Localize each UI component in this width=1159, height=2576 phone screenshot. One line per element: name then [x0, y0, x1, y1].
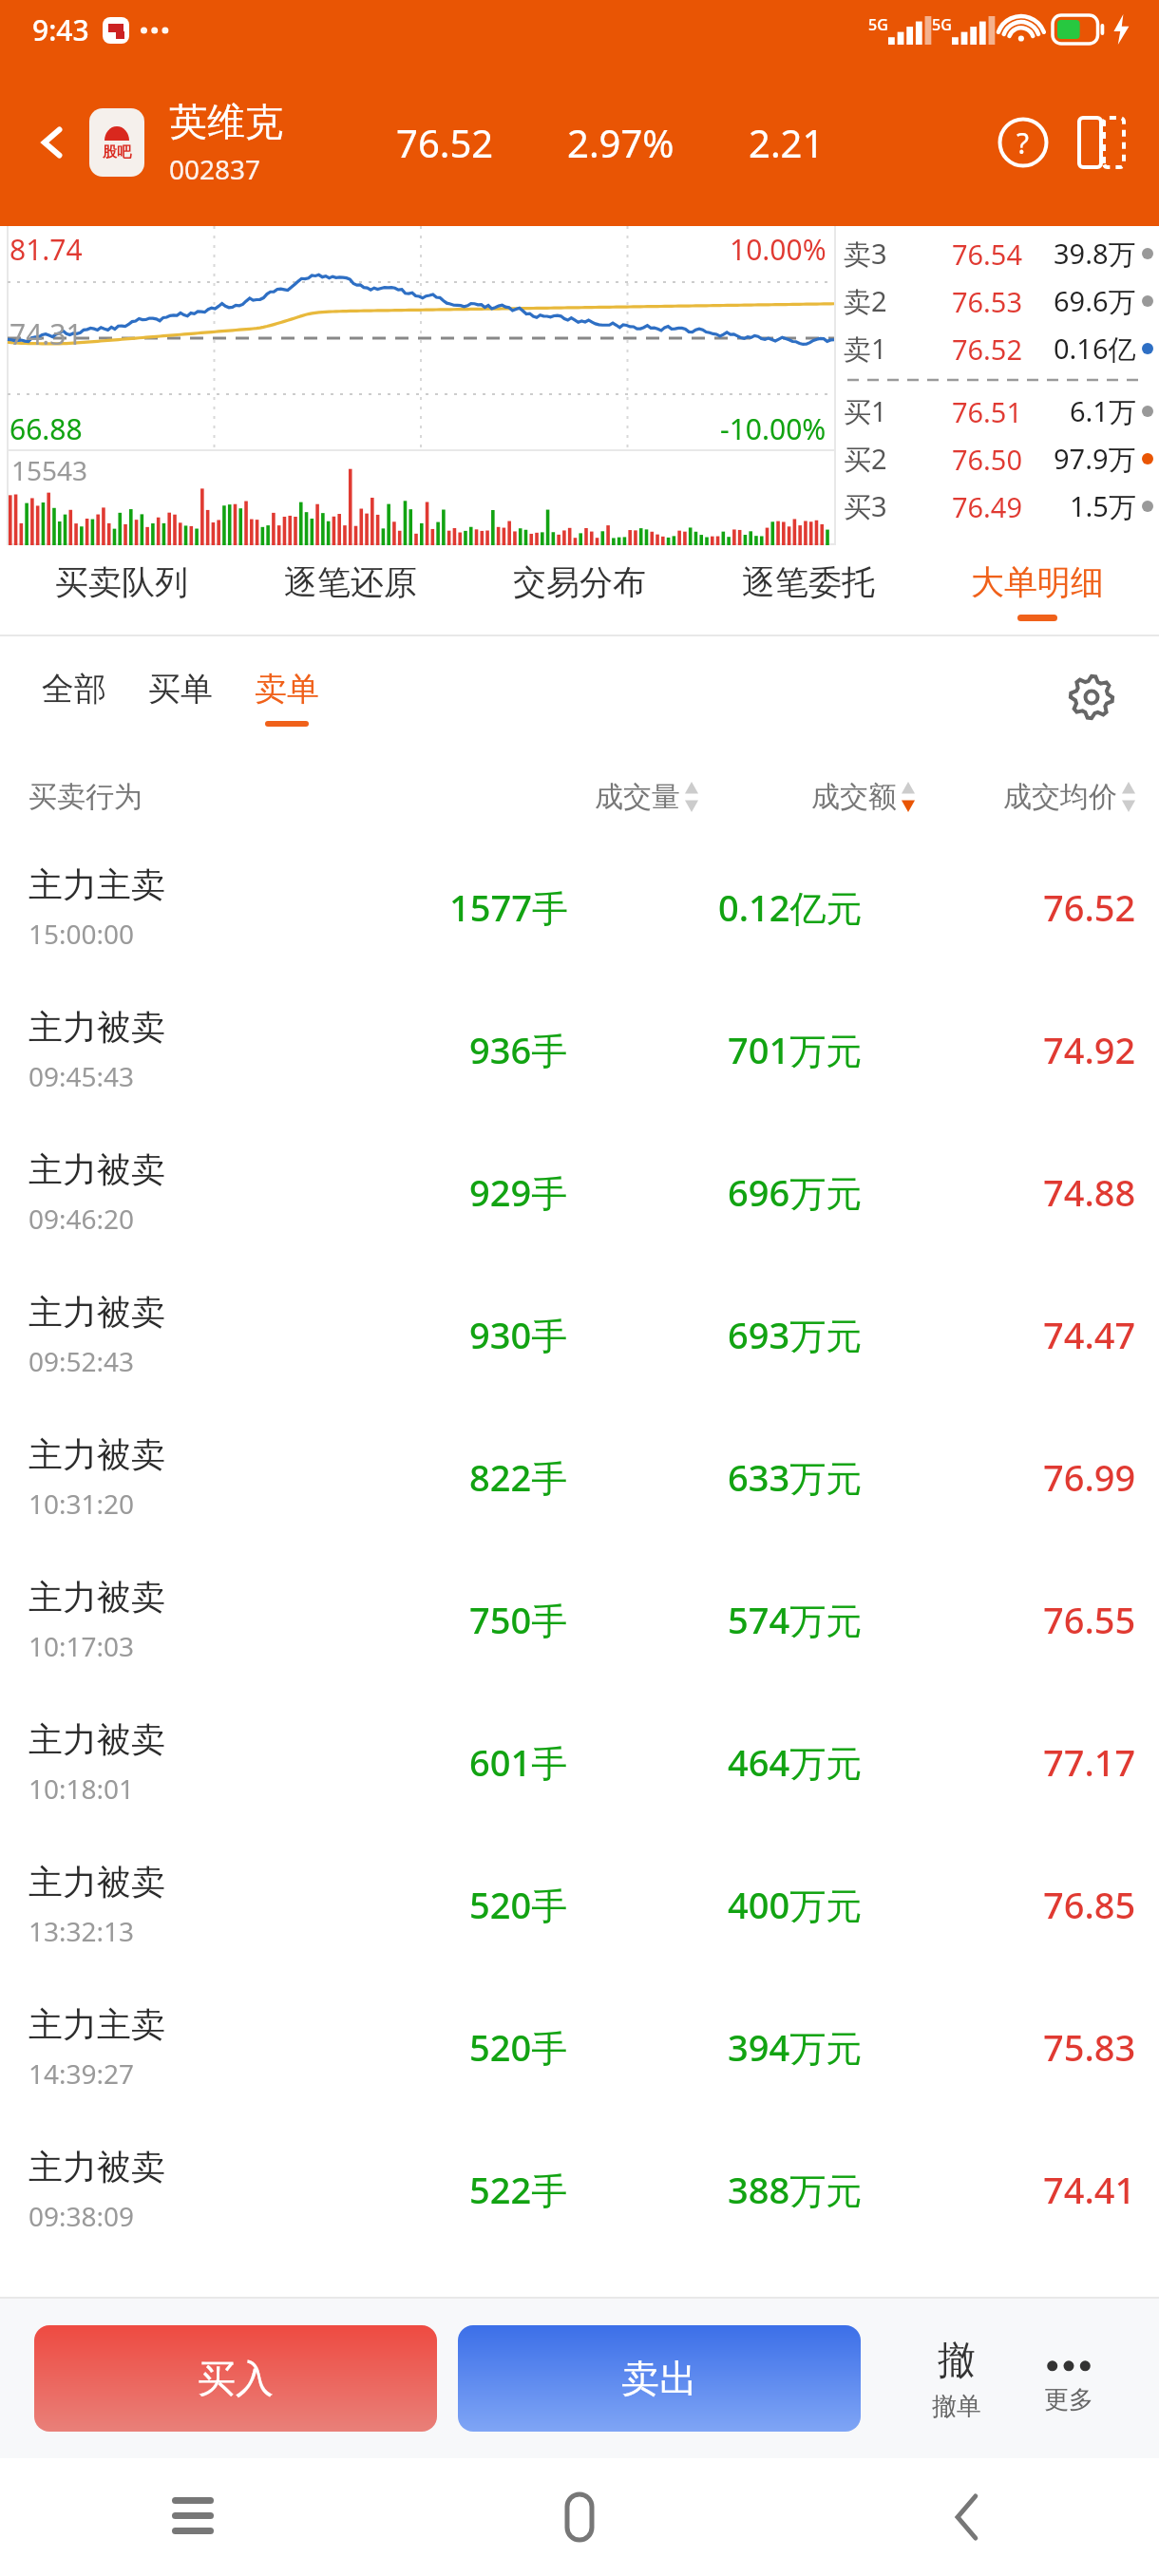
staticText: 卖2 — [844, 282, 887, 320]
staticText: 买2 — [844, 440, 887, 478]
staticText: 2.21 — [749, 117, 825, 168]
staticText: -10.00% — [720, 409, 826, 448]
button[interactable]: 交易分布 — [465, 545, 693, 636]
staticText: 81.74 — [9, 230, 83, 269]
staticText: 15543 — [11, 452, 88, 488]
button[interactable]: Scan — [1066, 107, 1136, 178]
staticText: 大单明细 — [971, 561, 1104, 603]
button[interactable]: 主力被卖 — [0, 2118, 1159, 2261]
button[interactable]: 主力被卖 — [0, 1121, 1159, 1263]
staticText: 9:43 — [32, 10, 89, 49]
button[interactable]: 大单明细 — [922, 545, 1151, 636]
staticText: 逐笔还原 — [284, 561, 417, 603]
button[interactable]: 卖2 — [844, 277, 1153, 325]
staticText: 10:31:20 — [28, 1486, 135, 1522]
staticText: 76.51 — [887, 393, 1022, 430]
staticText: 822手 — [469, 1452, 568, 1502]
button[interactable]: 主力被卖 — [0, 1833, 1159, 1976]
staticText: 76.99 — [1043, 1452, 1136, 1502]
button[interactable]: 买2 — [844, 435, 1153, 483]
button[interactable]: 更多 — [1013, 2299, 1125, 2458]
button[interactable]: 逐笔委托 — [693, 545, 922, 636]
staticText: 主力主卖 — [28, 863, 165, 906]
button[interactable]: 撤 — [901, 2299, 1013, 2458]
button[interactable]: 买1 — [844, 388, 1153, 435]
staticText: 0.12亿元 — [718, 882, 863, 932]
staticText: 13:32:13 — [28, 1913, 135, 1949]
staticText: 买卖队列 — [55, 561, 188, 603]
button[interactable]: Back — [19, 109, 85, 176]
staticText: 主力被卖 — [28, 1861, 165, 1904]
staticText: 成交量 — [595, 779, 680, 815]
staticText: 39.8万 — [1054, 235, 1136, 273]
staticText: 6.1万 — [1070, 392, 1136, 430]
staticText: 400万元 — [728, 1880, 863, 1929]
button[interactable]: 买单 — [127, 636, 234, 758]
button[interactable]: 买入 — [34, 2325, 437, 2432]
staticText: 76.49 — [887, 488, 1022, 525]
staticText: 520手 — [469, 1880, 568, 1929]
staticText: 成交额 — [811, 779, 897, 815]
staticText: 66.88 — [9, 409, 83, 448]
button[interactable]: 主力主卖 — [0, 1976, 1159, 2118]
staticText: 97.9万 — [1054, 440, 1136, 478]
button[interactable]: 成交额 — [811, 779, 916, 815]
staticText: 成交均价 — [1003, 779, 1117, 815]
button[interactable]: 主力被卖 — [0, 1691, 1159, 1833]
button[interactable]: Home — [386, 2458, 772, 2576]
staticText: 主力被卖 — [28, 1576, 165, 1619]
staticText: 卖出 — [621, 2355, 697, 2402]
staticText: 701万元 — [728, 1025, 863, 1074]
staticText: 002837 — [169, 151, 261, 187]
button[interactable]: 买3 — [844, 483, 1153, 530]
staticText: 1.5万 — [1070, 487, 1136, 525]
staticText: 5G — [932, 14, 952, 35]
staticText: 主力主卖 — [28, 2003, 165, 2046]
staticText: 5G — [868, 14, 888, 35]
staticText: 买1 — [844, 392, 887, 430]
staticText: ? — [1016, 123, 1030, 162]
staticText: 主力被卖 — [28, 1148, 165, 1191]
staticText: 撤单 — [932, 2391, 981, 2422]
button[interactable]: 成交量 — [595, 779, 699, 815]
button[interactable]: Help — [986, 105, 1060, 180]
staticText: 09:52:43 — [28, 1343, 135, 1379]
staticText: 74.31 — [9, 314, 83, 353]
staticText: 522手 — [469, 2165, 568, 2214]
staticText: 75.83 — [1043, 2022, 1136, 2072]
staticText: 主力被卖 — [28, 1433, 165, 1476]
button[interactable]: 卖单 — [234, 636, 340, 758]
button[interactable]: 成交均价 — [1003, 779, 1136, 815]
staticText: 76.53 — [887, 283, 1022, 320]
button[interactable]: 买卖队列 — [8, 545, 236, 636]
button[interactable]: 主力被卖 — [0, 1406, 1159, 1548]
staticText: 交易分布 — [513, 561, 646, 603]
staticText: 英维克 — [169, 98, 283, 145]
staticText: 10.00% — [730, 230, 826, 269]
button[interactable]: 全部 — [21, 636, 127, 758]
button[interactable]: 股吧 — [89, 108, 144, 177]
staticText: 0.16亿 — [1054, 330, 1136, 368]
staticText: 卖1 — [844, 330, 887, 368]
button[interactable]: 卖1 — [844, 325, 1153, 372]
button[interactable]: 主力被卖 — [0, 978, 1159, 1121]
staticText: 574万元 — [728, 1595, 863, 1644]
staticText: 主力被卖 — [28, 1291, 165, 1334]
button[interactable]: 主力被卖 — [0, 1548, 1159, 1691]
button[interactable]: 逐笔还原 — [236, 545, 465, 636]
button[interactable]: 主力主卖 — [0, 836, 1159, 978]
button[interactable]: Back — [772, 2458, 1159, 2576]
button[interactable]: 主力被卖 — [0, 1263, 1159, 1406]
button[interactable]: Settings — [1058, 664, 1125, 730]
staticText: 693万元 — [728, 1310, 863, 1359]
staticText: 撤 — [938, 2336, 976, 2383]
staticText: 936手 — [469, 1025, 568, 1074]
staticText: 74.41 — [1043, 2165, 1136, 2214]
button[interactable]: Recents — [0, 2458, 386, 2576]
button[interactable]: 卖3 — [844, 230, 1153, 277]
button[interactable]: 卖出 — [458, 2325, 861, 2432]
staticText: 更多 — [1044, 2384, 1093, 2415]
staticText: 卖单 — [255, 669, 319, 710]
staticText: 76.55 — [1043, 1595, 1136, 1644]
staticText: 76.52 — [1043, 882, 1136, 932]
